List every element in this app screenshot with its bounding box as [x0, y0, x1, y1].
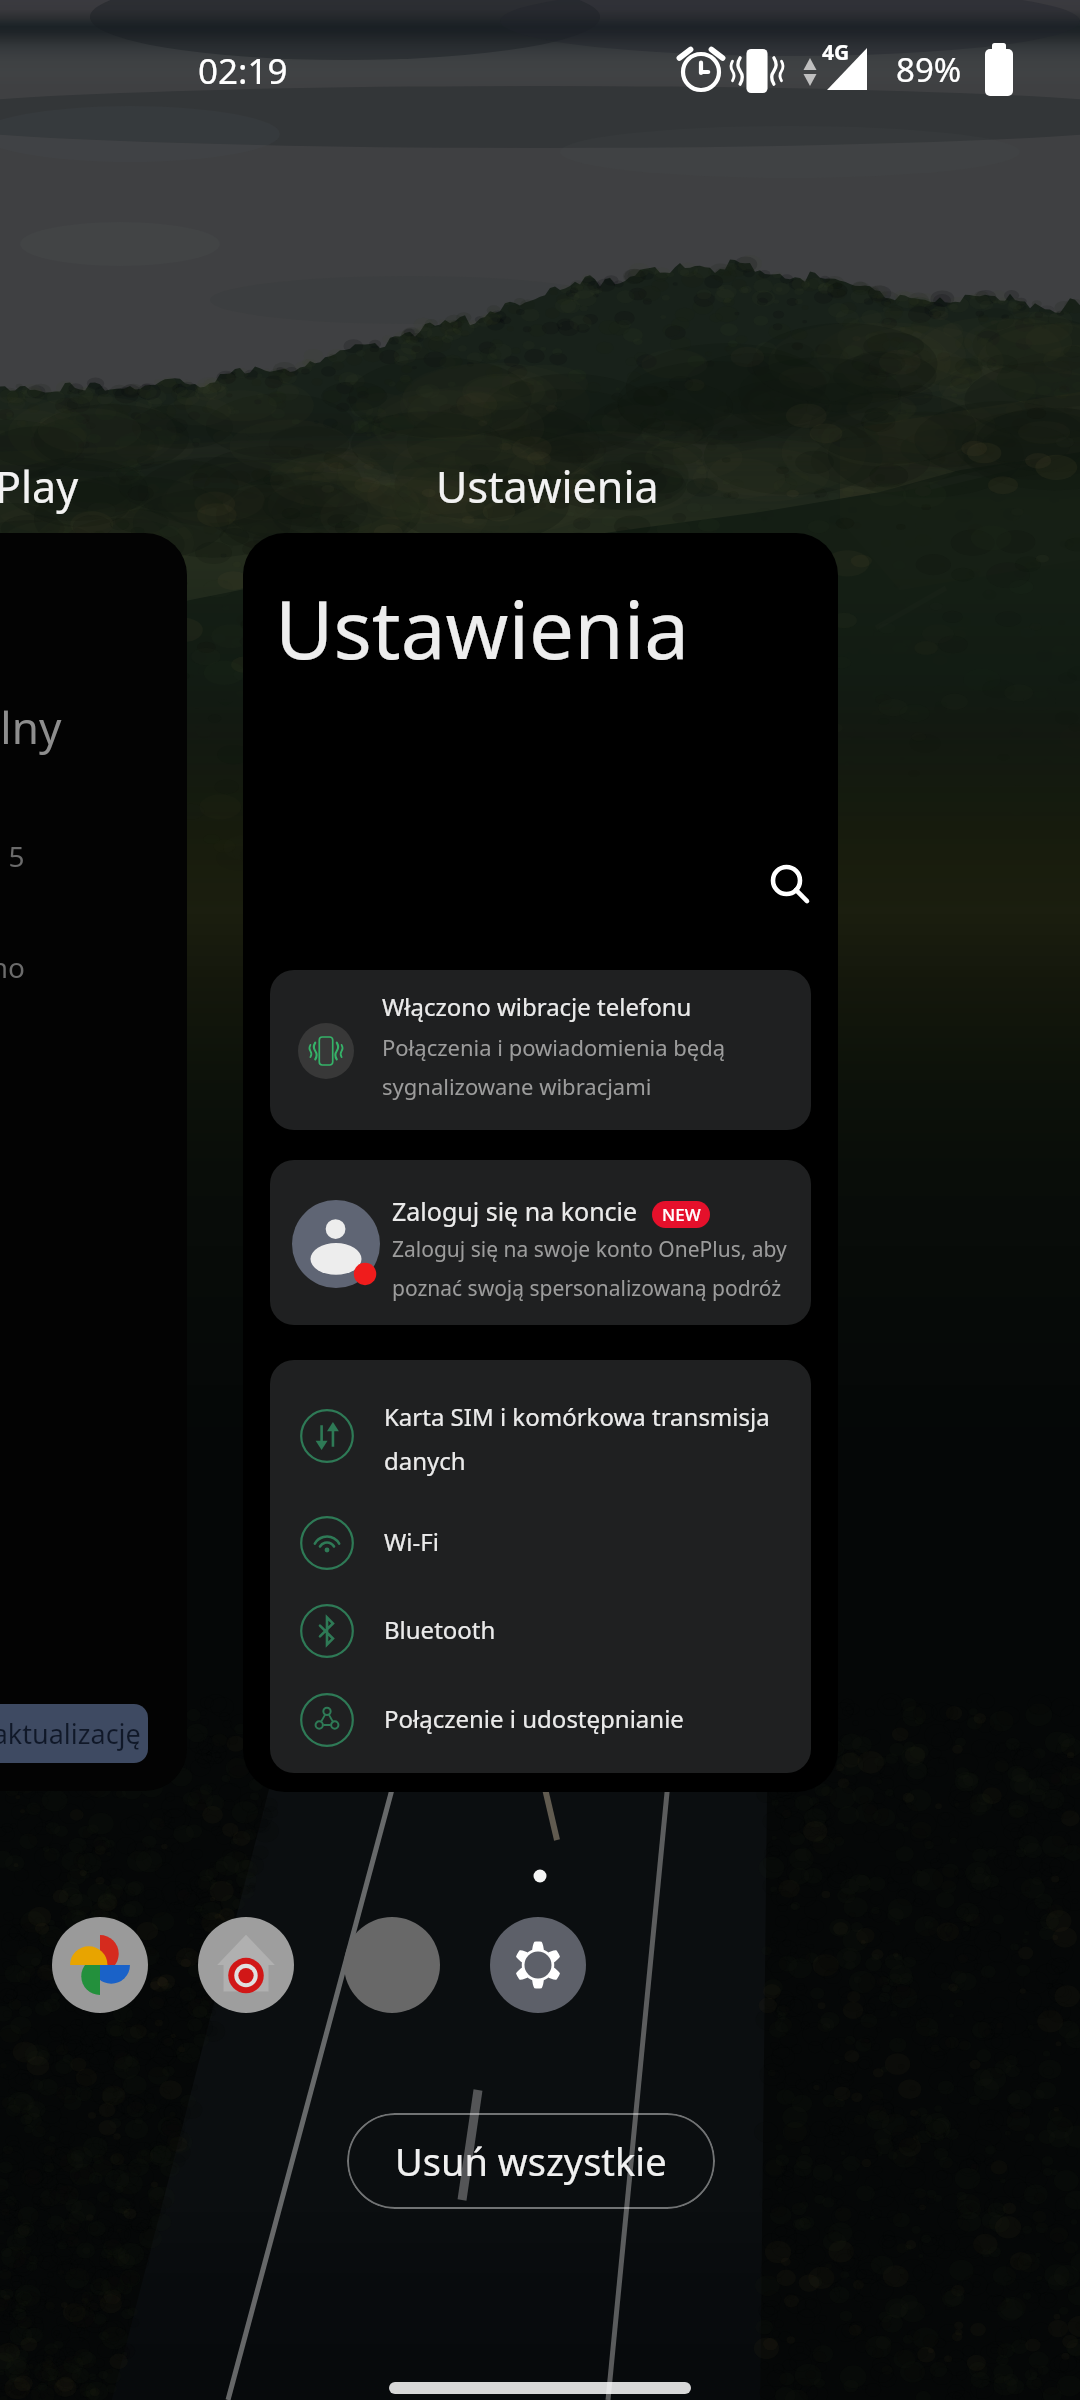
staticText: 4G — [822, 38, 850, 67]
staticText: Usuń wszystkie — [395, 2135, 667, 2187]
staticText: Zaloguj się na koncie — [392, 1194, 638, 1228]
button[interactable]: Karta SIM i komórkowa transmisja danych — [270, 1396, 811, 1476]
button[interactable]: Ustawienia — [490, 1917, 586, 2013]
staticText: 02:19 — [198, 47, 288, 95]
staticText: Włączono wibracje telefonu — [382, 990, 692, 1023]
staticText: Połączenie i udostępnianie — [384, 1702, 811, 1735]
staticText: Połączenia i powiadomienia będą sygnaliz… — [382, 1032, 726, 1102]
button[interactable]: Bluetooth — [270, 1591, 811, 1671]
staticText: 89% — [896, 47, 962, 92]
button[interactable]: Ustawienia — [243, 533, 838, 1792]
staticText: Liczba aktualizacji do pobrania: 5 — [0, 837, 25, 875]
staticText: Sprawdź aktualizację — [0, 1715, 141, 1752]
button[interactable]: Połączenie i udostępnianie — [270, 1680, 811, 1760]
button[interactable]: Sprawdź aktualizację — [0, 1704, 148, 1763]
staticText: Sklep Play jest aktualny — [0, 697, 62, 757]
staticText: Bluetooth — [384, 1613, 811, 1646]
staticText: Wi-Fi — [384, 1525, 811, 1558]
button[interactable]: Target — [198, 1917, 294, 2013]
staticText: Sprawdzono — [0, 948, 25, 986]
button[interactable]: Szukaj — [751, 846, 829, 924]
button[interactable]: Zdjęcia Google — [52, 1917, 148, 2013]
button[interactable]: Zaloguj się na koncie — [270, 1160, 811, 1325]
button[interactable]: Włączono wibracje telefonu — [270, 970, 811, 1130]
button[interactable]: Aplikacja — [344, 1917, 440, 2013]
staticText: Ustawienia — [275, 573, 690, 682]
button[interactable]: Wi-Fi — [270, 1503, 811, 1583]
button[interactable]: Sklep Play jest aktualny — [0, 533, 187, 1791]
staticText: Ustawienia — [436, 457, 659, 516]
staticText: Karta SIM i komórkowa transmisja danych — [384, 1400, 811, 1477]
button[interactable]: Usuń wszystkie — [347, 2113, 715, 2209]
staticText: Play — [0, 457, 79, 516]
staticText: NEW — [662, 1203, 701, 1226]
staticText: Zaloguj się na swoje konto OnePlus, aby … — [392, 1235, 787, 1302]
